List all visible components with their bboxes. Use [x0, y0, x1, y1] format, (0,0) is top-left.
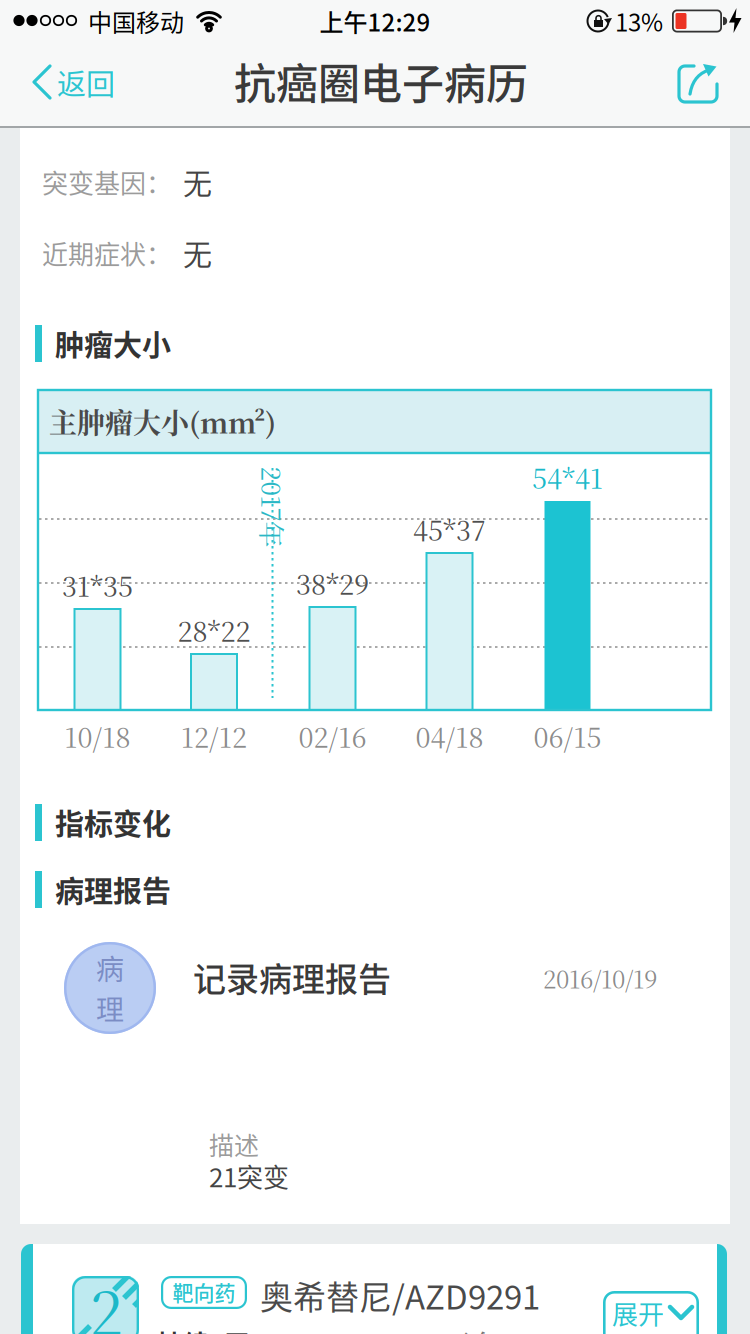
staticText: 10/18	[64, 717, 130, 755]
staticText: 靶向药	[172, 1276, 235, 1307]
staticText: 肿瘤大小	[55, 322, 171, 364]
staticText: 记录病理报告	[193, 953, 391, 1001]
staticText: 展开	[612, 1294, 664, 1332]
staticText: 21突变	[209, 1157, 289, 1195]
button[interactable]: Share	[672, 58, 724, 110]
staticText: 12/12	[181, 717, 247, 755]
staticText: 中国移动	[88, 4, 184, 38]
staticText: 指标变化	[55, 801, 171, 843]
button[interactable]: 展开	[603, 1291, 699, 1334]
staticText: 06/15	[533, 717, 601, 755]
staticText: 38*29	[296, 564, 369, 602]
staticText: 主肿瘤大小(mm²)	[49, 401, 276, 442]
staticText: 病 理	[96, 947, 124, 1029]
staticText: 2017年	[232, 488, 313, 526]
staticText: 无	[183, 232, 212, 274]
staticText: 描述	[209, 1126, 259, 1162]
staticText: 13%	[615, 4, 663, 38]
staticText: 近期症状：	[42, 234, 172, 272]
staticText: 返回	[57, 61, 115, 103]
staticText: 奥希替尼/AZD9291	[260, 1271, 540, 1319]
staticText: 病理报告	[55, 868, 171, 910]
staticText: 上午12:29	[319, 4, 430, 38]
button[interactable]: 病 理	[20, 930, 730, 1060]
staticText: 31*35	[62, 566, 133, 604]
staticText: 突变基因：	[42, 163, 172, 201]
staticText: 28*22	[177, 611, 250, 649]
staticText: 04/18	[415, 717, 483, 755]
staticText: 无	[183, 161, 212, 203]
staticText: 2	[89, 1267, 122, 1334]
staticText: 02/16	[298, 717, 366, 755]
staticText: 54*41	[532, 458, 603, 496]
staticText: 45*37	[413, 510, 486, 548]
staticText: 2017.07/10 至今	[303, 1324, 496, 1334]
button[interactable]: 返回	[0, 42, 130, 128]
staticText: 2016/10/19	[543, 961, 657, 995]
staticText: 抗癌圈电子病历	[234, 51, 528, 111]
staticText: 持续6天：	[157, 1324, 276, 1334]
